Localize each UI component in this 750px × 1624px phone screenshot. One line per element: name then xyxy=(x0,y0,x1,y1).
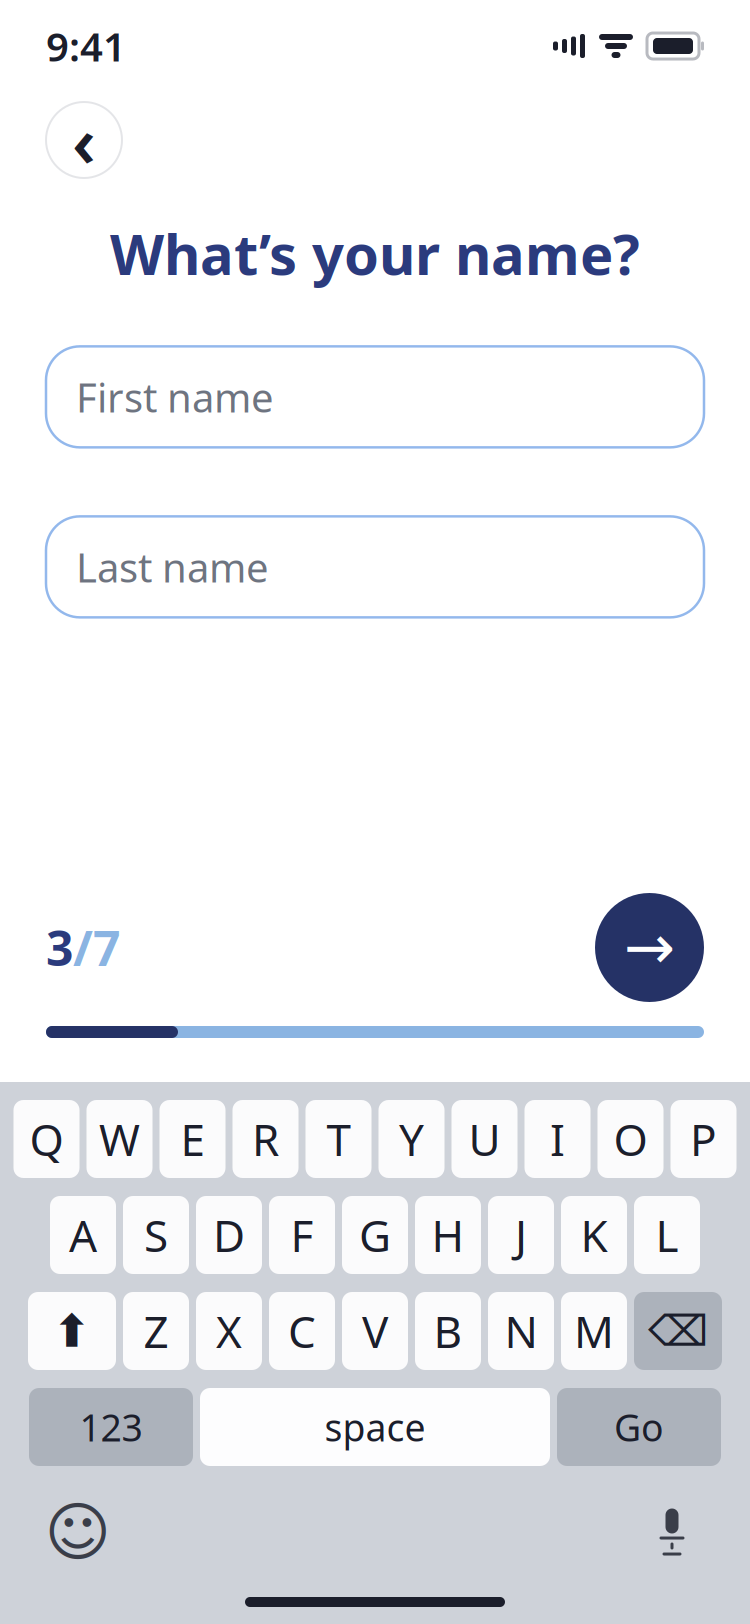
staticText: T xyxy=(326,1110,350,1168)
button[interactable]: First name xyxy=(46,346,704,447)
staticText: 3 xyxy=(46,916,73,979)
staticText: 123 xyxy=(79,1402,142,1452)
button[interactable]: Emoji keyboard xyxy=(50,1504,106,1560)
button[interactable]: P xyxy=(670,1100,736,1178)
button[interactable]: E xyxy=(159,1100,225,1178)
staticText: L xyxy=(655,1206,678,1264)
button[interactable]: I xyxy=(524,1100,590,1178)
button[interactable]: W xyxy=(86,1100,152,1178)
staticText: ☺ xyxy=(44,1496,111,1568)
staticText: R xyxy=(252,1110,279,1168)
button[interactable]: Shift xyxy=(28,1292,116,1370)
staticText: M xyxy=(574,1302,614,1360)
staticText: A xyxy=(69,1206,97,1264)
button[interactable]: U xyxy=(451,1100,517,1178)
staticText: First name xyxy=(76,370,274,423)
staticText: 9:41 xyxy=(46,19,126,72)
staticText: Z xyxy=(143,1302,168,1360)
staticText: C xyxy=(288,1302,316,1360)
button[interactable]: T xyxy=(305,1100,371,1178)
button[interactable]: Last name xyxy=(46,516,704,617)
staticText: What’s your name? xyxy=(110,216,640,290)
staticText: /7 xyxy=(73,916,120,979)
button[interactable]: space xyxy=(200,1388,550,1466)
staticText: ⌫ xyxy=(648,1307,708,1355)
button[interactable]: N xyxy=(488,1292,554,1370)
staticText: B xyxy=(433,1302,462,1360)
button[interactable]: K xyxy=(561,1196,627,1274)
staticText: U xyxy=(468,1110,500,1168)
staticText: X xyxy=(216,1302,242,1360)
button[interactable]: Next xyxy=(595,893,704,1002)
button[interactable]: V xyxy=(342,1292,408,1370)
staticText: Y xyxy=(399,1110,424,1168)
button[interactable]: C xyxy=(269,1292,335,1370)
staticText: I xyxy=(550,1110,565,1168)
staticText: W xyxy=(99,1110,140,1168)
staticText: Q xyxy=(29,1110,63,1168)
button[interactable]: M xyxy=(561,1292,627,1370)
button[interactable]: R xyxy=(232,1100,298,1178)
staticText: H xyxy=(431,1206,464,1264)
button[interactable]: Z xyxy=(123,1292,189,1370)
staticText: V xyxy=(362,1302,388,1360)
staticText: S xyxy=(144,1206,168,1264)
staticText: K xyxy=(580,1206,607,1264)
staticText: D xyxy=(213,1206,245,1264)
staticText: G xyxy=(359,1206,391,1264)
button[interactable]: B xyxy=(415,1292,481,1370)
staticText: ‹ xyxy=(72,94,96,186)
staticText: space xyxy=(324,1402,425,1452)
button[interactable]: F xyxy=(269,1196,335,1274)
button[interactable]: L xyxy=(634,1196,700,1274)
button[interactable]: X xyxy=(196,1292,262,1370)
button[interactable]: O xyxy=(597,1100,663,1178)
button[interactable]: Dictation xyxy=(644,1504,700,1560)
staticText: Go xyxy=(614,1402,664,1452)
button[interactable]: J xyxy=(488,1196,554,1274)
staticText: J xyxy=(515,1206,527,1264)
button[interactable]: 123 xyxy=(29,1388,193,1466)
staticText: Last name xyxy=(76,540,269,593)
staticText: O xyxy=(613,1110,647,1168)
button[interactable]: S xyxy=(123,1196,189,1274)
button[interactable]: Y xyxy=(378,1100,444,1178)
button[interactable]: Delete xyxy=(634,1292,722,1370)
button[interactable]: Back xyxy=(46,102,122,178)
button[interactable]: Go xyxy=(557,1388,721,1466)
staticText: E xyxy=(180,1110,204,1168)
button[interactable]: Q xyxy=(13,1100,79,1178)
button[interactable]: G xyxy=(342,1196,408,1274)
button[interactable]: D xyxy=(196,1196,262,1274)
staticText: ⬆ xyxy=(53,1305,91,1357)
staticText: → xyxy=(624,913,675,982)
button[interactable]: A xyxy=(50,1196,116,1274)
staticText: P xyxy=(690,1110,717,1168)
staticText: F xyxy=(290,1206,313,1264)
staticText: N xyxy=(504,1302,537,1360)
button[interactable]: H xyxy=(415,1196,481,1274)
